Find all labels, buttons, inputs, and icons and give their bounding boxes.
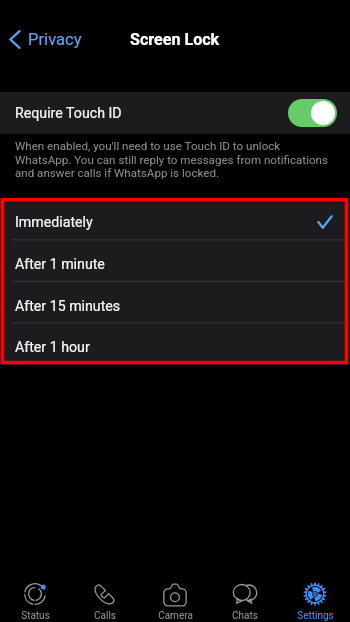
button[interactable]: Calls bbox=[70, 577, 140, 622]
button[interactable]: After 15 minutes bbox=[0, 283, 349, 325]
staticText: Camera bbox=[158, 610, 193, 622]
button[interactable]: After 1 hour bbox=[0, 325, 349, 365]
button[interactable]: Back to Privacy bbox=[5, 25, 84, 54]
staticText: Calls bbox=[94, 610, 116, 622]
staticText: After 1 minute bbox=[15, 256, 105, 273]
staticText: Status bbox=[21, 610, 50, 622]
button[interactable]: Immediately bbox=[0, 199, 349, 241]
staticText: Immediately bbox=[15, 214, 93, 231]
button[interactable]: Chats bbox=[210, 577, 280, 622]
staticText: Settings bbox=[297, 610, 334, 622]
staticText: After 1 hour bbox=[15, 339, 90, 356]
staticText: When enabled, you'll need to use Touch I… bbox=[15, 139, 333, 179]
button[interactable]: Camera bbox=[140, 577, 210, 622]
staticText: After 15 minutes bbox=[15, 298, 121, 315]
button[interactable]: After 1 minute bbox=[0, 241, 349, 283]
button[interactable]: Require Touch ID bbox=[0, 92, 350, 134]
button[interactable]: Status bbox=[0, 577, 70, 622]
button[interactable]: Require Touch ID toggle bbox=[288, 99, 337, 127]
staticText: Chats bbox=[232, 610, 258, 622]
button[interactable]: Settings bbox=[280, 577, 350, 622]
staticText: Screen Lock bbox=[130, 30, 220, 49]
staticText: Privacy bbox=[28, 30, 82, 49]
staticText: Require Touch ID bbox=[15, 105, 122, 122]
